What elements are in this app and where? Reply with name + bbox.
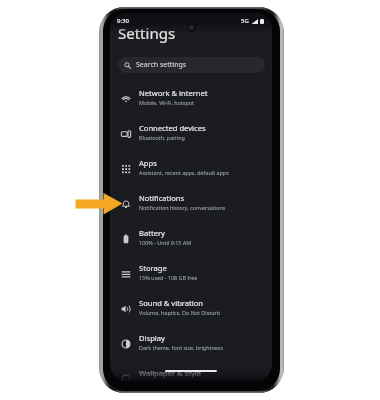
button[interactable]: Sound & vibration: [110, 289, 272, 324]
staticText: Volume, haptics, Do Not Disturb: [139, 309, 221, 316]
staticText: 9:30: [117, 17, 129, 25]
staticText: 100% - Until 9:15 AM: [139, 239, 192, 246]
staticText: Battery: [139, 228, 165, 238]
staticText: Sound & vibration: [139, 298, 204, 308]
button[interactable]: Storage: [110, 254, 272, 289]
staticText: Notifications: [139, 193, 185, 203]
staticText: Assistant, recent apps, default apps: [139, 169, 229, 176]
button[interactable]: Network & internet: [110, 79, 272, 114]
staticText: Wallpaper & style: [139, 368, 202, 378]
staticText: Search settings: [136, 60, 187, 70]
staticText: Mobile, Wi-Fi, hotspot: [139, 99, 194, 106]
button[interactable]: Apps: [110, 149, 272, 184]
staticText: 5G: [241, 17, 249, 25]
button[interactable]: Display: [110, 324, 272, 359]
staticText: Storage: [139, 263, 167, 273]
button[interactable]: Search settings: [118, 57, 265, 73]
staticText: 15% used - 108 GB free: [139, 274, 198, 281]
button[interactable]: Battery: [110, 219, 272, 254]
staticText: Connected devices: [139, 123, 206, 133]
button[interactable]: Connected devices: [110, 114, 272, 149]
staticText: Apps: [139, 158, 157, 168]
staticText: Bluetooth, pairing: [139, 134, 185, 141]
staticText: Notification history, conversations: [139, 204, 226, 211]
staticText: Settings: [118, 23, 176, 43]
button[interactable]: Wallpaper & style: [110, 359, 272, 381]
button[interactable]: Notifications: [110, 184, 272, 219]
staticText: Network & internet: [139, 88, 208, 98]
other: Pointer arrow to Notifications: [74, 190, 124, 218]
staticText: Dark theme, font size, brightness: [139, 344, 223, 351]
staticText: Display: [139, 333, 165, 343]
